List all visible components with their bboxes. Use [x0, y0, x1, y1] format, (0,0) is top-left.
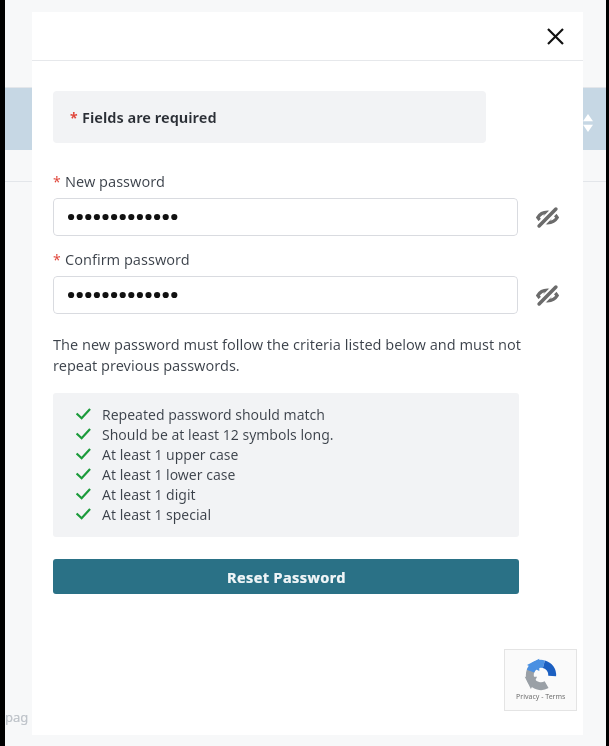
button[interactable]: Show password — [532, 280, 562, 310]
staticText: Confirm password — [65, 249, 190, 269]
staticText: Fields are required — [82, 107, 217, 127]
staticText: Repeated password should match — [102, 405, 325, 424]
button[interactable]: Show password — [532, 202, 562, 232]
staticText: Should be at least 12 symbols long. — [102, 425, 334, 444]
staticText: New password — [65, 171, 165, 191]
button[interactable]: Sort — [581, 112, 595, 134]
staticText: At least 1 upper case — [102, 445, 239, 464]
button[interactable] — [53, 276, 518, 314]
staticText: * — [53, 172, 61, 191]
staticText: At least 1 lower case — [102, 465, 236, 484]
button[interactable]: Reset Password — [53, 559, 519, 594]
button[interactable]: Close — [539, 20, 571, 52]
staticText: At least 1 special — [102, 505, 212, 524]
staticText: At least 1 digit — [102, 485, 196, 504]
staticText: The new password must follow the criteri… — [53, 334, 526, 376]
button[interactable]: reCAPTCHA — [504, 649, 577, 711]
staticText: Reset Password — [227, 567, 346, 587]
button[interactable] — [53, 198, 518, 236]
staticText: * — [53, 250, 61, 269]
staticText: * — [70, 108, 78, 127]
staticText: pag — [5, 708, 29, 726]
staticText: Privacy - Terms — [516, 692, 566, 702]
